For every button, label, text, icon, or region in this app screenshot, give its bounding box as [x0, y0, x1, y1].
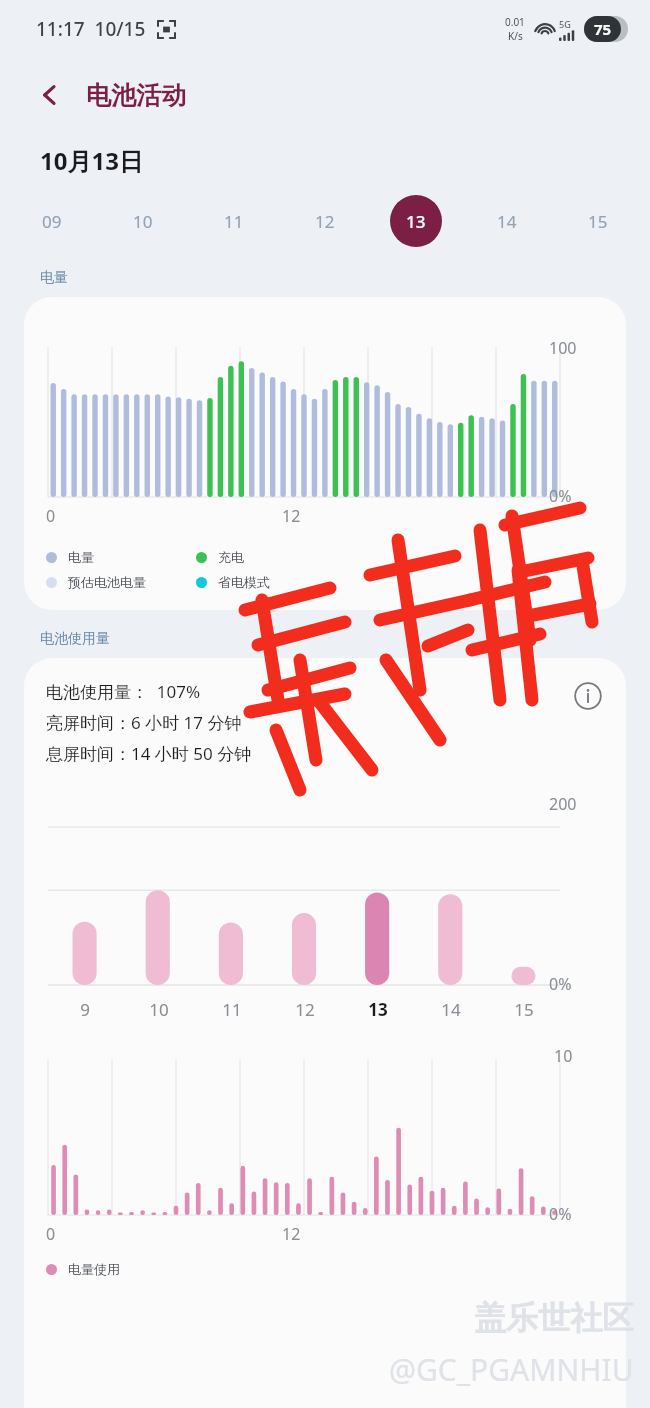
staticText: 0%: [549, 973, 572, 995]
staticText: 200: [549, 793, 577, 815]
button[interactable]: 12: [299, 195, 351, 247]
staticText: 省电模式: [218, 574, 270, 590]
staticText: 电池使用量： 107%: [46, 680, 201, 703]
staticText: 12: [315, 210, 335, 233]
button[interactable]: 13: [390, 195, 442, 247]
staticText: @GC_PGAMNHIU: [389, 1349, 634, 1390]
button[interactable]: Info: [564, 672, 612, 720]
staticText: 5G: [559, 18, 571, 30]
staticText: 14: [441, 998, 461, 1021]
staticText: 10: [133, 210, 153, 233]
staticText: 11: [222, 998, 242, 1021]
staticText: 100: [549, 337, 577, 359]
staticText: 12: [295, 998, 315, 1021]
staticText: 息屏时间：14 小时 50 分钟: [46, 742, 252, 765]
staticText: 电量: [40, 269, 68, 287]
staticText: 09: [42, 210, 62, 233]
staticText: 10: [149, 998, 169, 1021]
button[interactable]: 电池使用量： 107%: [24, 658, 626, 1408]
staticText: 0%: [549, 485, 572, 507]
staticText: 亮屏时间：6 小时 17 分钟: [46, 711, 242, 734]
staticText: 11: [224, 210, 244, 233]
staticText: 13: [368, 998, 388, 1021]
staticText: 10: [554, 1045, 573, 1067]
staticText: 充电: [218, 549, 244, 565]
staticText: 12: [282, 1223, 301, 1245]
button[interactable]: 09: [26, 195, 78, 247]
staticText: 0.01: [505, 15, 525, 29]
staticText: 盖乐世社区: [474, 1298, 634, 1338]
staticText: 11:17 10/15: [36, 16, 146, 42]
staticText: 15: [588, 210, 608, 233]
button[interactable]: 10: [117, 195, 169, 247]
staticText: 电池使用量: [40, 630, 110, 648]
button[interactable]: 14: [481, 195, 533, 247]
staticText: 0: [46, 505, 56, 527]
staticText: 电量: [68, 549, 94, 565]
staticText: 电量使用: [68, 1261, 120, 1277]
button[interactable]: 100: [24, 297, 626, 610]
staticText: 电池活动: [86, 80, 186, 111]
staticText: 10月13日: [40, 144, 143, 177]
staticText: 0: [46, 1223, 56, 1245]
staticText: 75: [594, 19, 612, 39]
button[interactable]: 11: [208, 195, 260, 247]
staticText: 13: [406, 210, 426, 233]
staticText: 9: [80, 998, 90, 1021]
staticText: 15: [514, 998, 534, 1021]
staticText: 预估电池电量: [68, 574, 146, 590]
staticText: 14: [497, 210, 517, 233]
staticText: 0%: [549, 1203, 572, 1225]
button[interactable]: 15: [572, 195, 624, 247]
staticText: K/s: [508, 29, 523, 43]
staticText: 12: [282, 505, 301, 527]
button[interactable]: Back: [26, 71, 74, 119]
